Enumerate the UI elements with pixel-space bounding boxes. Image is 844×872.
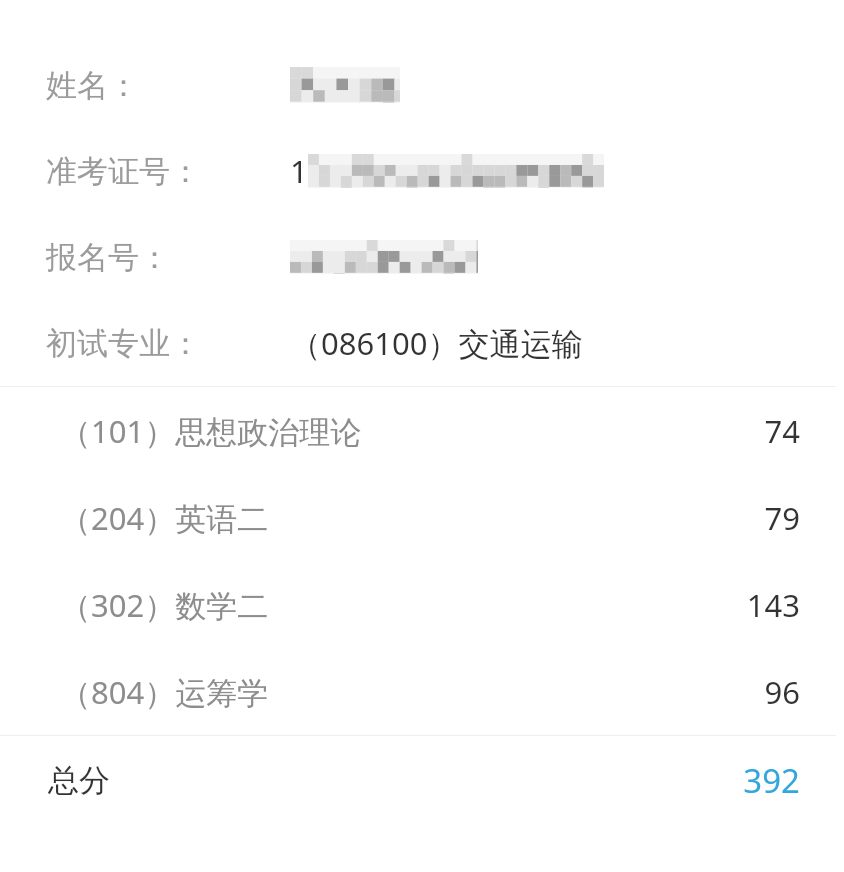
other: 准考证号已隐藏 <box>308 154 604 188</box>
staticText: 总分 <box>48 761 743 800</box>
staticText: 74 <box>764 410 800 452</box>
other: 姓名已隐藏 <box>290 67 400 103</box>
button[interactable]: 总分 <box>0 736 844 824</box>
button[interactable]: 准考证号： <box>0 128 844 214</box>
staticText: 报名号： <box>46 238 170 277</box>
button[interactable]: （804）运筹学 <box>0 648 844 735</box>
staticText: 143 <box>746 584 800 626</box>
staticText: （101）思想政治理论 <box>60 410 764 452</box>
staticText: （204）英语二 <box>60 497 764 539</box>
staticText: 79 <box>764 497 800 539</box>
staticText: 准考证号： <box>46 152 201 191</box>
staticText: （302）数学二 <box>60 584 746 626</box>
button[interactable]: 姓名： <box>0 42 844 128</box>
staticText: 初试专业： <box>46 324 201 363</box>
button[interactable]: （101）思想政治理论 <box>0 387 844 474</box>
other: 报名号已隐藏 <box>290 240 478 274</box>
button[interactable]: 初试专业： <box>0 300 844 386</box>
staticText: 1 <box>290 150 308 192</box>
staticText: （086100）交通运输 <box>290 322 583 364</box>
staticText: 姓名： <box>46 66 139 105</box>
staticText: 392 <box>743 758 800 803</box>
button[interactable]: 报名号： <box>0 214 844 300</box>
button[interactable]: （302）数学二 <box>0 561 844 648</box>
staticText: 96 <box>764 671 800 713</box>
staticText: （804）运筹学 <box>60 671 764 713</box>
button[interactable]: （204）英语二 <box>0 474 844 561</box>
